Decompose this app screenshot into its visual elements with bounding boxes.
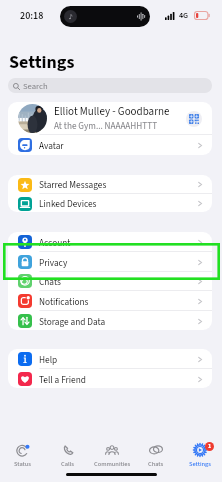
staticText: Storage and Data xyxy=(39,315,106,328)
staticText: Chats xyxy=(148,459,164,468)
button[interactable]: Account xyxy=(8,232,212,252)
button[interactable]: Calls xyxy=(45,443,90,468)
button[interactable]: Chats xyxy=(134,443,178,468)
staticText: Settings xyxy=(189,459,212,468)
button[interactable]: Chats xyxy=(8,271,212,291)
staticText: 20:18 xyxy=(20,9,44,23)
staticText: Calls xyxy=(61,459,74,468)
staticText: At the Gym... NAAAAHHTTT xyxy=(54,120,158,133)
button[interactable]: Tell a Friend xyxy=(8,369,212,388)
button[interactable]: Linked Devices xyxy=(8,194,212,212)
staticText: Chats xyxy=(39,275,61,288)
staticText: 4G xyxy=(179,10,189,21)
staticText: 1 xyxy=(208,442,212,451)
button[interactable]: Notifications xyxy=(8,291,212,311)
button[interactable]: Show QR code xyxy=(186,111,202,127)
button[interactable]: Help xyxy=(8,349,212,369)
button[interactable]: Communities xyxy=(90,443,134,468)
staticText: Starred Messages xyxy=(39,178,107,191)
staticText: Notifications xyxy=(39,295,89,308)
button[interactable]: Starred Messages xyxy=(8,175,212,194)
button[interactable]: Privacy xyxy=(8,252,212,272)
staticText: Help xyxy=(39,353,58,366)
button[interactable]: Avatar xyxy=(8,135,212,155)
staticText: Linked Devices xyxy=(39,197,97,210)
staticText: Search xyxy=(23,80,48,92)
button[interactable]: Storage and Data xyxy=(8,311,212,330)
button[interactable]: Status xyxy=(0,443,45,468)
staticText: Status xyxy=(14,459,32,468)
staticText: Tell a Friend xyxy=(39,373,86,386)
staticText: Account xyxy=(39,236,71,249)
button[interactable]: 1 xyxy=(178,443,222,468)
button[interactable]: Elliot Mulley - Goodbarne xyxy=(8,102,212,135)
staticText: ♪ xyxy=(69,12,73,22)
staticText: Privacy xyxy=(39,256,68,269)
staticText: Elliot Mulley - Goodbarne xyxy=(54,104,170,120)
button[interactable]: Search xyxy=(8,78,212,93)
staticText: Settings xyxy=(9,50,75,76)
staticText: Communities xyxy=(94,459,131,468)
staticText: Avatar xyxy=(39,139,64,152)
